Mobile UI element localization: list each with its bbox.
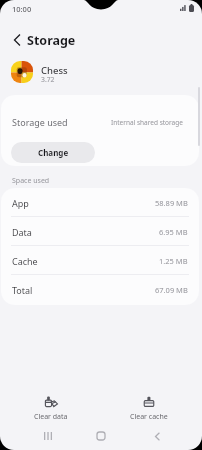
staticText: Change [38, 147, 69, 158]
button[interactable]: Total [1, 275, 199, 304]
staticText: Storage [27, 32, 76, 49]
button[interactable]: Cache [1, 246, 199, 275]
staticText: 6.95 MB [159, 227, 188, 237]
staticText: Total [12, 284, 33, 296]
button[interactable]: Back [5, 28, 29, 52]
staticText: Clear data [34, 412, 68, 422]
button[interactable]: Recents [37, 425, 59, 447]
button[interactable]: Clear data [23, 390, 79, 422]
staticText: 67.09 MB [155, 285, 188, 295]
button[interactable]: App [1, 188, 199, 217]
button[interactable]: Back [146, 425, 168, 447]
staticText: 10:00 [12, 4, 32, 14]
staticText: Space used [12, 176, 50, 186]
staticText: 1.25 MB [159, 256, 188, 266]
staticText: Chess [41, 64, 68, 77]
staticText: Data [12, 226, 32, 238]
staticText: 3.72 [41, 75, 55, 84]
button[interactable]: Home [90, 425, 112, 447]
button[interactable]: Clear cache [121, 390, 177, 422]
staticText: Internal shared storage [111, 118, 183, 127]
staticText: Storage used [12, 116, 68, 128]
button[interactable]: Change [11, 142, 95, 163]
staticText: Clear cache [130, 412, 168, 422]
button[interactable]: Data [1, 217, 199, 246]
staticText: Cache [12, 255, 38, 267]
staticText: App [12, 197, 29, 209]
staticText: 58.89 MB [155, 198, 188, 208]
